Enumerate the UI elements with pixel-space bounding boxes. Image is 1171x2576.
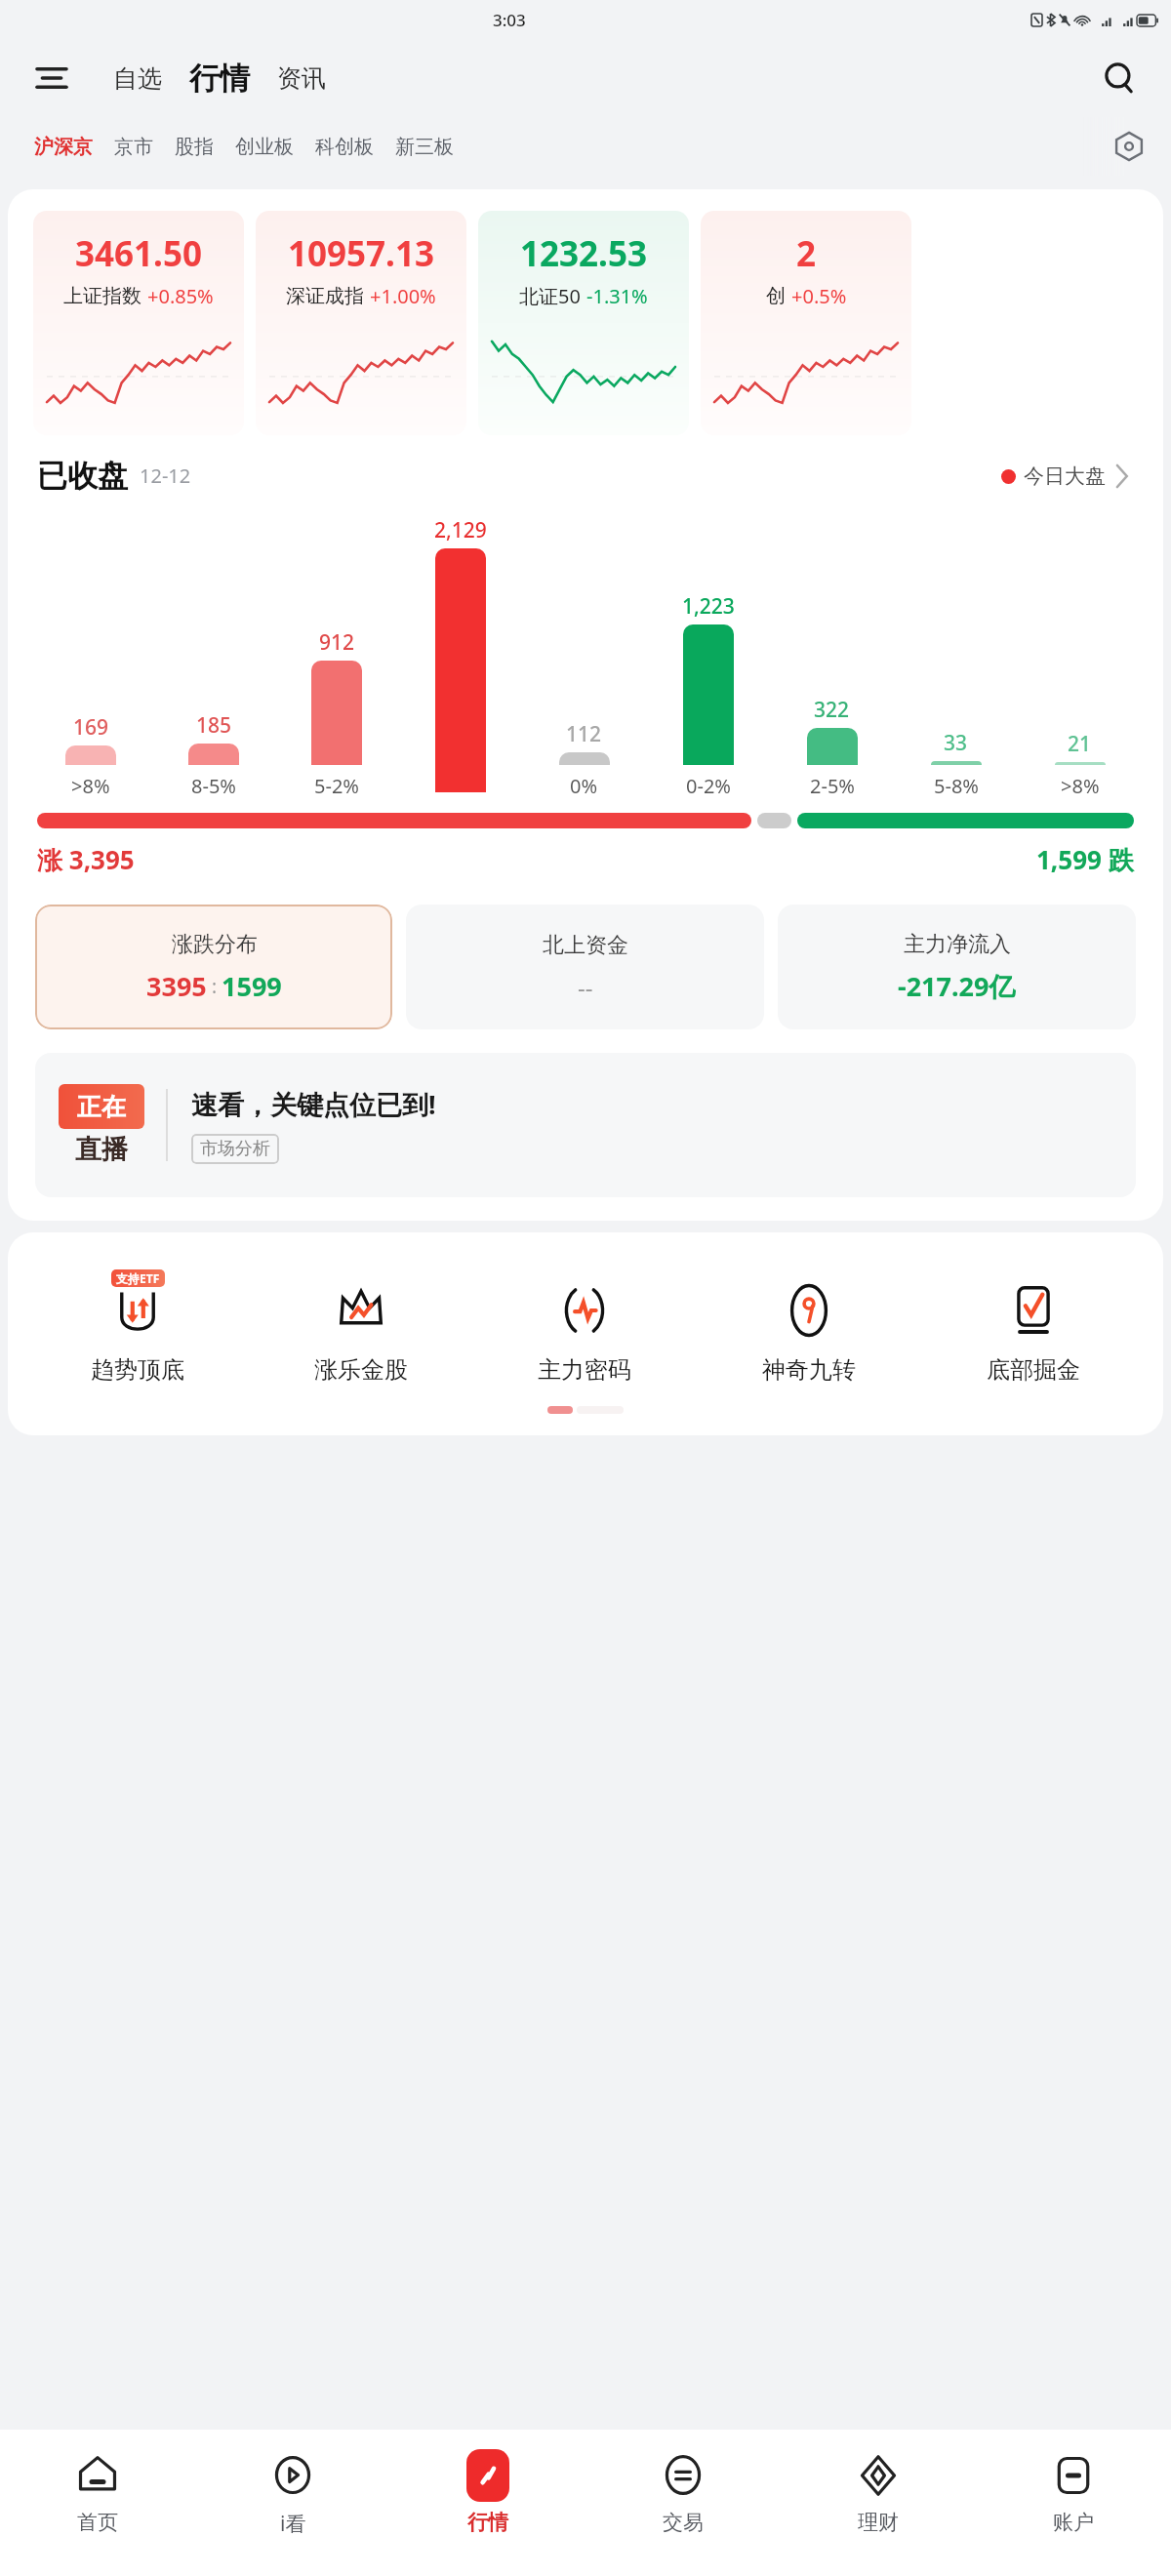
staticText: 科创板 xyxy=(315,135,374,159)
staticText: 北证50 xyxy=(519,283,581,309)
staticText: +0.5% xyxy=(791,283,847,309)
staticText: 神奇九转 xyxy=(762,1355,856,1385)
button[interactable]: 10957.13 xyxy=(256,211,466,435)
staticText: 5-8% xyxy=(934,773,979,799)
button[interactable]: 创业板 xyxy=(224,127,304,167)
staticText: 12-12 xyxy=(140,463,191,489)
button[interactable]: 自选 xyxy=(105,58,170,100)
staticText: 185 xyxy=(196,711,232,740)
button[interactable]: 底部掘金 xyxy=(921,1271,1146,1389)
staticText: i看 xyxy=(280,2510,306,2538)
staticText: 速看，关键点位已到! xyxy=(191,1086,436,1122)
button[interactable]: 北上资金 xyxy=(406,905,764,1029)
staticText: 直播 xyxy=(75,1133,128,1166)
button[interactable]: Search xyxy=(1095,54,1144,102)
button[interactable]: 3461.50 xyxy=(33,211,244,435)
staticText: 33 xyxy=(944,729,968,757)
staticText: 北上资金 xyxy=(543,932,628,959)
button[interactable]: Menu xyxy=(29,56,74,101)
button[interactable]: 涨乐金股 xyxy=(249,1271,472,1389)
staticText: >8% xyxy=(1061,773,1100,799)
staticText: 涨跌分布 xyxy=(172,931,258,958)
staticText: 2,129 xyxy=(434,516,487,544)
button[interactable]: 涨跌分布 xyxy=(35,905,392,1029)
staticText: 支持ETF xyxy=(116,1270,160,1286)
button[interactable]: 新三板 xyxy=(384,127,464,167)
staticText: 行情 xyxy=(189,60,250,98)
staticText: 1599 xyxy=(222,968,282,1004)
button[interactable]: Settings xyxy=(1107,124,1151,169)
button[interactable]: 正在 xyxy=(35,1053,1136,1197)
staticText: 涨 3,395 xyxy=(37,842,135,877)
staticText: 创业板 xyxy=(235,135,294,159)
button[interactable]: 主力净流入 xyxy=(778,905,1136,1029)
staticText: 自选 xyxy=(113,63,162,94)
button[interactable]: 京市 xyxy=(103,127,164,167)
button[interactable]: 账户 xyxy=(976,2443,1171,2541)
staticText: 新三板 xyxy=(395,135,454,159)
staticText: -- xyxy=(578,971,593,1003)
staticText: 0-2% xyxy=(686,773,731,799)
staticText: 上证指数 xyxy=(63,284,141,308)
button[interactable]: 资讯 xyxy=(269,58,334,100)
staticText: 5-2% xyxy=(314,773,359,799)
staticText: 0% xyxy=(570,773,598,799)
staticText: 今日大盘 xyxy=(1024,463,1106,489)
staticText: 理财 xyxy=(858,2510,899,2535)
button[interactable]: 行情 xyxy=(390,2443,585,2541)
staticText: 已收盘 xyxy=(37,457,128,495)
button[interactable]: 2 xyxy=(701,211,911,435)
staticText: : xyxy=(207,974,222,999)
staticText: 主力密码 xyxy=(538,1355,631,1385)
button[interactable]: 神奇九转 xyxy=(697,1271,921,1389)
staticText: +0.85% xyxy=(147,283,214,309)
staticText: 21 xyxy=(1068,730,1092,758)
staticText: 市场分析 xyxy=(200,1138,270,1160)
staticText: 股指 xyxy=(175,135,214,159)
button[interactable]: 交易 xyxy=(585,2443,781,2541)
staticText: -217.29亿 xyxy=(898,968,1016,1004)
staticText: 深证成指 xyxy=(286,284,364,308)
button[interactable]: 首页 xyxy=(0,2443,195,2541)
staticText: 8-5% xyxy=(191,773,236,799)
button[interactable]: 沪深京 xyxy=(23,127,103,167)
staticText: 3461.50 xyxy=(75,230,202,277)
staticText: 3395 xyxy=(146,968,207,1004)
button[interactable]: 股指 xyxy=(164,127,224,167)
staticText: 1,223 xyxy=(682,592,735,621)
staticText: 京市 xyxy=(114,135,153,159)
staticText: 底部掘金 xyxy=(987,1355,1080,1385)
staticText: 1,599 跌 xyxy=(1036,842,1134,877)
staticText: 行情 xyxy=(467,2510,508,2535)
staticText: 正在 xyxy=(77,1092,126,1122)
staticText: 涨乐金股 xyxy=(314,1355,408,1385)
staticText: 112 xyxy=(566,720,602,748)
button[interactable]: 支持ETF xyxy=(25,1271,249,1389)
button[interactable]: 1232.53 xyxy=(478,211,689,435)
staticText: -1.31% xyxy=(586,283,648,309)
staticText: +1.00% xyxy=(370,283,436,309)
button[interactable]: 行情 xyxy=(182,58,258,100)
staticText: 1232.53 xyxy=(520,230,647,277)
staticText: 趋势顶底 xyxy=(91,1355,184,1385)
button[interactable]: 主力密码 xyxy=(472,1271,697,1389)
staticText: 169 xyxy=(73,713,109,742)
staticText: 3:03 xyxy=(493,9,526,31)
staticText: >8% xyxy=(71,773,110,799)
staticText: 资讯 xyxy=(277,63,326,94)
staticText: 322 xyxy=(814,696,850,724)
button[interactable]: 理财 xyxy=(781,2443,976,2541)
button[interactable]: i看 xyxy=(195,2443,390,2544)
staticText: 沪深京 xyxy=(34,135,93,159)
button[interactable]: 今日大盘 xyxy=(995,458,1134,495)
staticText: 912 xyxy=(319,628,355,657)
staticText: 账户 xyxy=(1053,2510,1094,2535)
button[interactable]: 科创板 xyxy=(304,127,384,167)
staticText: 创 xyxy=(766,284,786,308)
staticText: 首页 xyxy=(77,2510,118,2535)
staticText: 2 xyxy=(796,230,817,277)
staticText: 2-5% xyxy=(810,773,855,799)
staticText: 主力净流入 xyxy=(904,931,1011,958)
staticText: 10957.13 xyxy=(288,230,434,277)
staticText: 交易 xyxy=(663,2510,704,2535)
